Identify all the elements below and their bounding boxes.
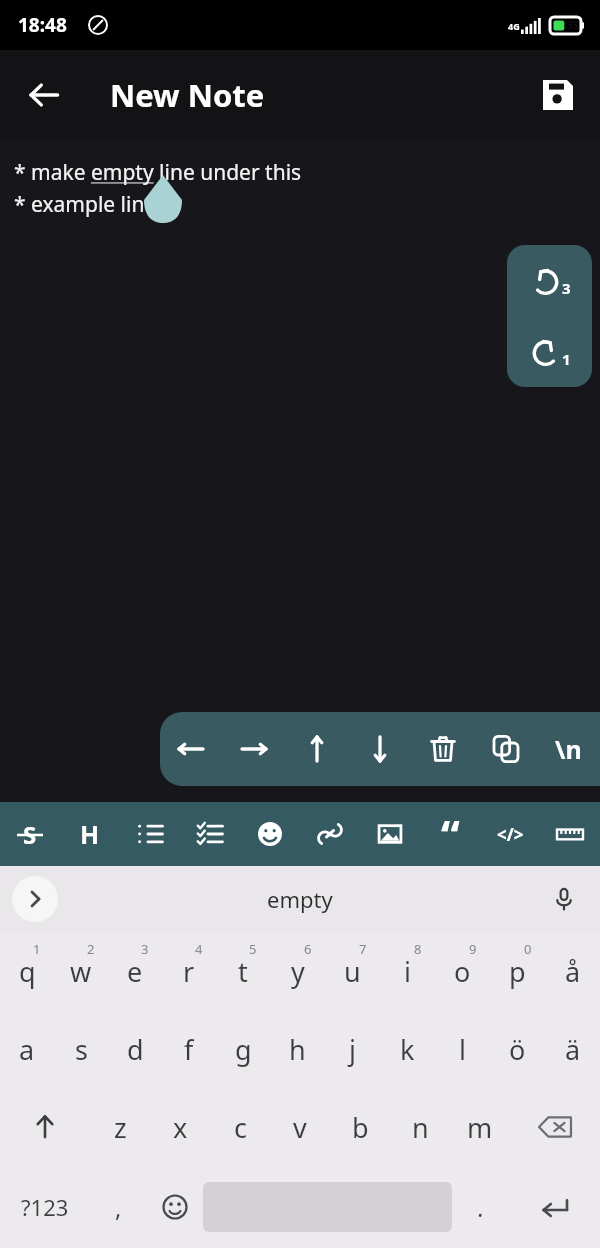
button[interactable]: f [162, 1010, 216, 1088]
button[interactable]: p [490, 932, 545, 1010]
button[interactable]: Move right [222, 712, 285, 786]
button[interactable]: Voice input [542, 877, 586, 921]
button[interactable]: Link [300, 802, 360, 866]
staticText: t [238, 953, 248, 990]
staticText: ö [509, 1031, 526, 1068]
button[interactable]: y [270, 932, 325, 1010]
staticText: 18:48 [18, 12, 67, 38]
button[interactable]: x [150, 1088, 210, 1166]
button[interactable]: w [54, 932, 108, 1010]
button[interactable]: ö [490, 1010, 545, 1088]
button[interactable]: Expand toolbar [12, 876, 58, 922]
button[interactable]: q [0, 932, 54, 1010]
button[interactable]: Move left [160, 712, 222, 786]
staticText: f [184, 1031, 194, 1068]
button[interactable]: , [90, 1166, 146, 1248]
button[interactable]: ?123 [0, 1166, 90, 1248]
button[interactable]: ä [545, 1010, 600, 1088]
button[interactable]: Emoji [146, 1166, 203, 1248]
button[interactable]: Shift [0, 1088, 90, 1166]
button[interactable]: Heading [60, 802, 120, 866]
button[interactable]: Undo [507, 245, 592, 316]
staticText: 1 [33, 940, 41, 958]
button[interactable]: Checklist [180, 802, 240, 866]
staticText: . [477, 1191, 484, 1224]
staticText: 7 [359, 940, 367, 958]
staticText: * make empty line under this [14, 158, 302, 187]
button[interactable]: Delete line [411, 712, 474, 786]
button[interactable]: m [450, 1088, 510, 1166]
button[interactable]: Redo [507, 316, 592, 387]
staticText: s [75, 1031, 88, 1068]
button[interactable]: Back [12, 63, 76, 127]
staticText: empty [267, 884, 333, 914]
button[interactable]: Quote [420, 802, 480, 866]
staticText: r [183, 953, 195, 990]
button[interactable]: Duplicate line [474, 712, 537, 786]
button[interactable]: e [108, 932, 162, 1010]
button[interactable]: g [216, 1010, 270, 1088]
staticText: 1 [562, 349, 571, 369]
staticText: , [115, 1191, 122, 1224]
staticText: ?123 [21, 1192, 69, 1222]
staticText: o [454, 953, 471, 990]
staticText: z [114, 1109, 127, 1146]
staticText: 9 [469, 940, 477, 958]
staticText: ä [565, 1031, 581, 1068]
button[interactable]: Strikethrough [0, 802, 60, 866]
button[interactable]: c [210, 1088, 270, 1166]
staticText: q [19, 953, 36, 990]
staticText: 4 [195, 940, 203, 958]
button[interactable]: . [452, 1166, 509, 1248]
staticText: b [352, 1109, 369, 1146]
button[interactable]: b [330, 1088, 390, 1166]
button[interactable]: Bullet list [120, 802, 180, 866]
button[interactable]: r [162, 932, 216, 1010]
staticText: w [70, 953, 92, 990]
staticText: S [23, 818, 37, 851]
button[interactable]: s [54, 1010, 108, 1088]
button[interactable]: Move up [285, 712, 348, 786]
button[interactable]: Backspace [510, 1088, 600, 1166]
button[interactable]: k [380, 1010, 435, 1088]
button[interactable]: u [325, 932, 380, 1010]
staticText: 5 [249, 940, 257, 958]
staticText: y [291, 953, 305, 990]
button[interactable]: a [0, 1010, 54, 1088]
button[interactable]: Insert newline [537, 712, 600, 786]
staticText: j [349, 1031, 356, 1068]
staticText: g [235, 1031, 252, 1068]
button[interactable]: n [390, 1088, 450, 1166]
button[interactable]: Image [360, 802, 420, 866]
button[interactable]: Save [530, 67, 586, 123]
staticText: k [400, 1031, 415, 1068]
button[interactable]: l [435, 1010, 490, 1088]
staticText: u [344, 953, 361, 990]
button[interactable]: t [216, 932, 270, 1010]
button[interactable]: Ruler [540, 802, 600, 866]
button[interactable]: i [380, 932, 435, 1010]
staticText: 2 [87, 940, 95, 958]
staticText: \n [555, 732, 582, 766]
button[interactable]: o [435, 932, 490, 1010]
staticText: 3 [562, 278, 571, 298]
staticText: 3 [141, 940, 149, 958]
staticText: a [19, 1031, 35, 1068]
button[interactable]: Move down [348, 712, 411, 786]
button[interactable]: v [270, 1088, 330, 1166]
button[interactable]: h [270, 1010, 325, 1088]
button[interactable]: empty [237, 876, 363, 922]
button[interactable]: z [90, 1088, 150, 1166]
staticText: n [412, 1109, 429, 1146]
button[interactable]: d [108, 1010, 162, 1088]
button[interactable]: Code [480, 802, 540, 866]
button[interactable]: å [545, 932, 600, 1010]
button[interactable]: Emoji [240, 802, 300, 866]
staticText: 35 [567, 18, 579, 32]
staticText: p [509, 953, 526, 990]
staticText: “ [441, 806, 460, 863]
button[interactable]: j [325, 1010, 380, 1088]
button[interactable]: Enter [509, 1166, 600, 1248]
staticText: </> [497, 823, 524, 846]
